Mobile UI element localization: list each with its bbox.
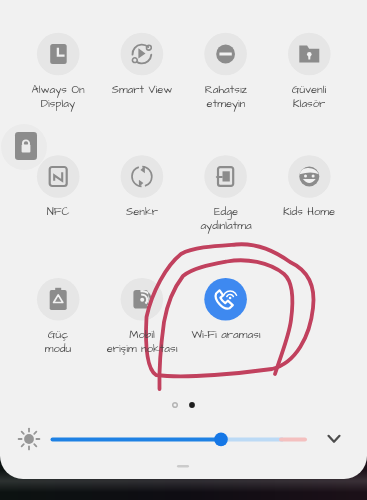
- staticText: Smart View: [96, 82, 188, 98]
- staticText: Güvenli Klasör: [263, 82, 355, 112]
- button[interactable]: Wi-Fi araması: [186, 271, 266, 359]
- staticText: NFC: [12, 204, 104, 220]
- button[interactable]: NFC: [18, 149, 98, 237]
- staticText: Edge aydınlatma: [180, 204, 272, 234]
- button[interactable]: Kids Home: [269, 149, 349, 237]
- button[interactable]: Güç modu: [18, 271, 98, 359]
- button[interactable]: Senkr: [102, 149, 182, 237]
- button[interactable]: Brightness slider: [14, 424, 314, 456]
- staticText: Wi-Fi araması: [180, 327, 272, 343]
- button[interactable]: Expand quick settings: [318, 424, 350, 456]
- button[interactable]: Smart View: [102, 26, 182, 114]
- button[interactable]: Edge aydınlatma: [186, 149, 266, 237]
- staticText: Kids Home: [263, 204, 355, 220]
- staticText: Senkr: [96, 204, 188, 220]
- button[interactable]: Mobil erişim noktası: [102, 271, 182, 359]
- button[interactable]: Rahatsız etmeyin: [186, 26, 266, 114]
- button[interactable]: Always On Display: [18, 26, 98, 114]
- staticText: Always On Display: [12, 82, 104, 112]
- staticText: Mobil erişim noktası: [96, 327, 188, 357]
- staticText: Rahatsız etmeyin: [180, 82, 272, 112]
- button[interactable]: Güvenli Klasör: [269, 26, 349, 114]
- staticText: Güç modu: [12, 327, 104, 357]
